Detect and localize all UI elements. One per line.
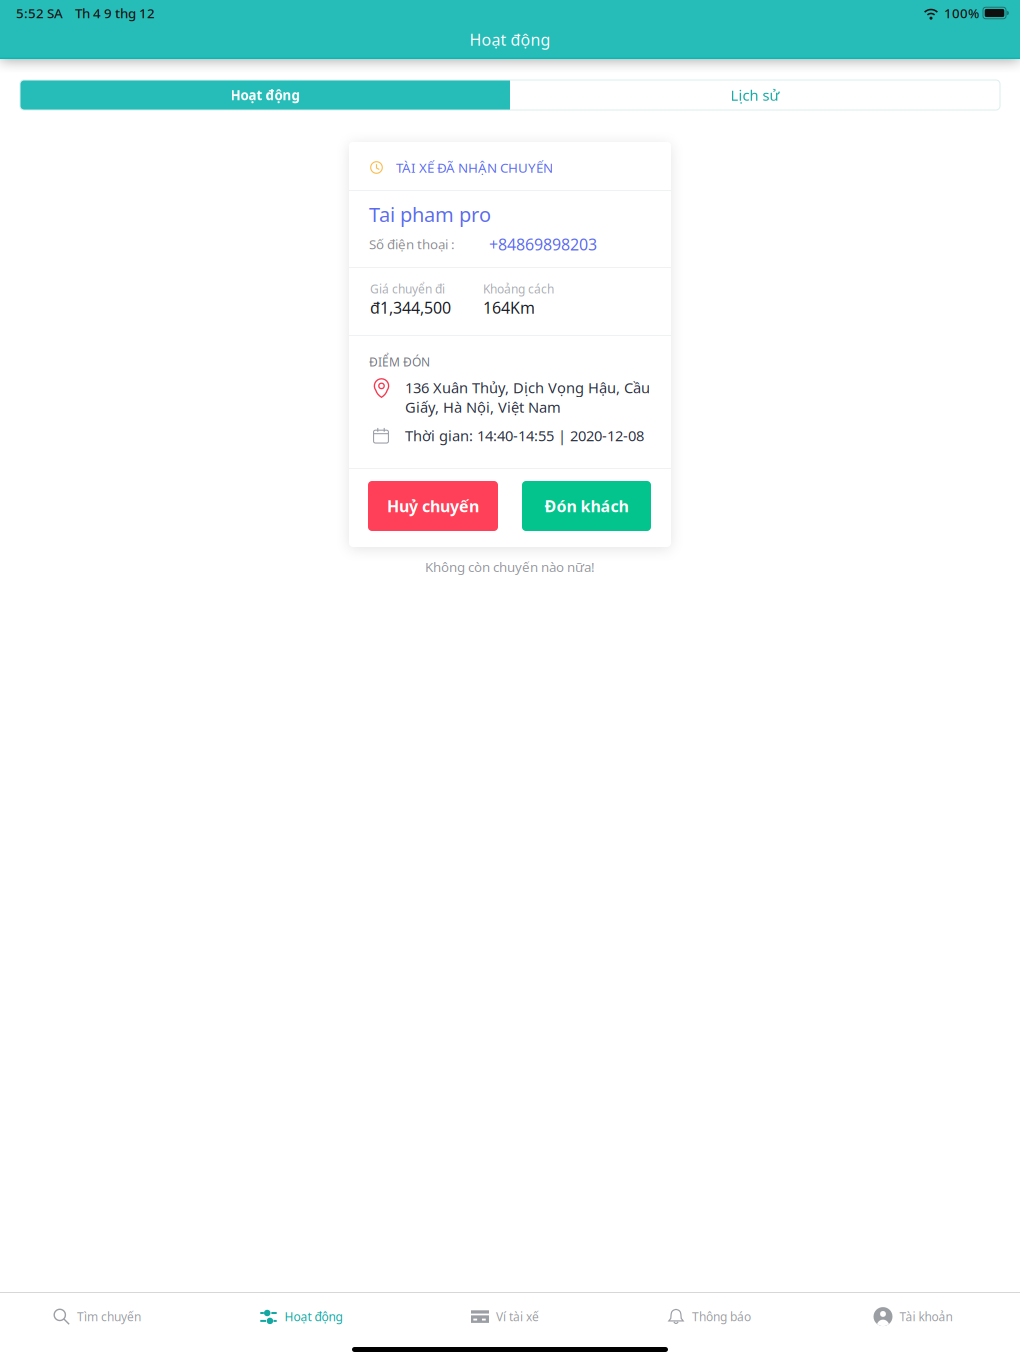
button[interactable]: Hoạt động <box>20 80 510 110</box>
button[interactable]: Lịch sử <box>510 80 1000 110</box>
staticText: ĐIỂM ĐÓN <box>369 354 430 370</box>
button[interactable]: Tài khoản <box>816 1295 1020 1339</box>
staticText: Tài khoản <box>899 1309 952 1324</box>
staticText: 164Km <box>483 297 535 318</box>
staticText: Hoạt động <box>230 86 299 104</box>
staticText: +84869898203 <box>489 234 597 255</box>
staticText: Th 4 9 thg 12 <box>75 4 155 22</box>
staticText: Không còn chuyến nào nữa! <box>425 558 595 576</box>
staticText: Hoạt động <box>469 29 550 50</box>
button[interactable]: Tìm chuyến <box>0 1295 204 1339</box>
staticText: 5:52 SA <box>16 4 63 22</box>
button[interactable]: Ví tài xế <box>408 1295 612 1339</box>
staticText: Số điện thoại : <box>369 235 455 253</box>
staticText: Thông báo <box>692 1309 751 1324</box>
button[interactable]: Hoạt động <box>204 1295 408 1339</box>
staticText: TÀI XẾ ĐÃ NHẬN CHUYẾN <box>396 159 553 176</box>
staticText: Tìm chuyến <box>77 1309 141 1324</box>
staticText: Thời gian: 14:40-14:55 | 2020-12-08 <box>405 426 644 445</box>
staticText: Lịch sử <box>730 85 779 105</box>
staticText: Hoạt động <box>284 1309 342 1324</box>
staticText: Giá chuyển đi <box>370 281 445 297</box>
staticText: Khoảng cách <box>483 281 554 297</box>
button[interactable]: Thông báo <box>612 1295 816 1339</box>
button[interactable]: Đón khách <box>522 481 651 531</box>
staticText: đ1,344,500 <box>370 297 451 318</box>
staticText: Huỷ chuyến <box>387 495 479 517</box>
staticText: Đón khách <box>544 495 628 517</box>
staticText: Tai pham pro <box>369 201 491 228</box>
staticText: 100% <box>944 4 979 22</box>
staticText: Ví tài xế <box>496 1309 539 1324</box>
staticText: 136 Xuân Thủy, Dịch Vọng Hậu, Cầu Giấy, … <box>405 378 650 417</box>
button[interactable]: Huỷ chuyến <box>368 481 498 531</box>
